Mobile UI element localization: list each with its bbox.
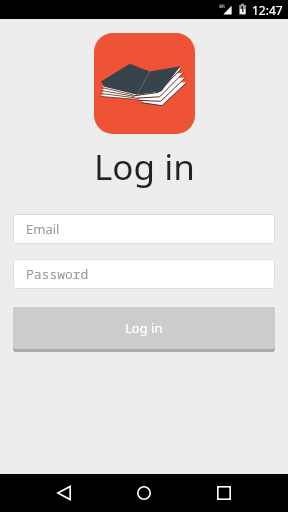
staticText: Log in bbox=[94, 143, 195, 191]
staticText: Password bbox=[26, 265, 89, 283]
button[interactable]: Back bbox=[45, 474, 83, 512]
button[interactable]: Password bbox=[13, 259, 275, 289]
button[interactable]: Recent apps bbox=[205, 474, 243, 512]
staticText: Log in bbox=[125, 319, 163, 337]
button[interactable]: Home bbox=[125, 474, 163, 512]
staticText: Email bbox=[26, 220, 60, 238]
staticText: 12:47 bbox=[252, 2, 283, 18]
button[interactable]: Email bbox=[13, 214, 275, 244]
button[interactable]: Log in bbox=[13, 307, 275, 352]
